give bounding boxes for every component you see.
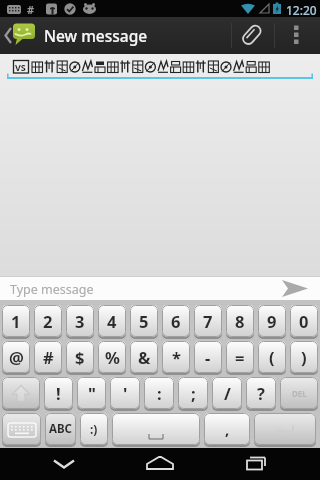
staticText: 12:20 [286,2,317,18]
button[interactable]: ; [178,377,208,411]
button[interactable]: - [194,341,222,375]
button[interactable]: ABC [45,413,76,447]
staticText: % [105,346,120,368]
button[interactable]: @ [2,341,30,375]
button[interactable]: 7 [194,305,222,339]
staticText: 8 [235,310,245,332]
staticText: ) [301,346,307,368]
button[interactable]: 4 [98,305,126,339]
button[interactable]: 0 [290,305,318,339]
button[interactable] [112,413,200,447]
button[interactable]: 9 [258,305,286,339]
staticText: VS [15,61,26,73]
button[interactable]: 2 [34,305,62,339]
button[interactable]: 6 [162,305,190,339]
button[interactable]: ( [258,341,286,375]
button[interactable]: ' [110,377,140,411]
button[interactable]: ) [290,341,318,375]
button[interactable]: # [34,341,62,375]
staticText: ; [191,382,196,404]
staticText: 5 [139,310,149,332]
staticText: , [225,419,230,439]
staticText: = [235,346,245,368]
staticText: 2 [43,310,53,332]
staticText: # [43,346,54,368]
staticText: 1 [11,310,21,332]
button[interactable] [0,448,106,480]
staticText: " [88,382,96,404]
button[interactable]: $ [66,341,94,375]
button[interactable] [213,448,320,480]
staticText: 6 [171,310,181,332]
button[interactable] [106,448,213,480]
button[interactable]: ? [246,377,276,411]
staticText: * [172,346,181,368]
staticText: :) [90,421,98,437]
staticText: ' [123,382,128,404]
button[interactable]: 3 [66,305,94,339]
staticText: : [157,382,162,404]
button[interactable]: : [144,377,174,411]
button[interactable]: * [162,341,190,375]
button[interactable]: :) [80,413,108,447]
staticText: @ [9,346,24,368]
button[interactable]: , [204,413,250,447]
staticText: 7 [203,310,213,332]
button[interactable] [2,377,40,411]
staticText: ? [257,382,265,404]
staticText: ! [56,382,61,404]
button[interactable]: 5 [130,305,158,339]
staticText: ( [269,346,275,368]
staticText: 4 [107,310,117,332]
button[interactable]: / [212,377,242,411]
button[interactable]: = [226,341,254,375]
button[interactable] [0,54,320,80]
staticText: $ [75,346,85,368]
staticText: & [138,346,151,368]
button[interactable]: ! [44,377,73,411]
staticText: 9 [267,310,277,332]
button[interactable] [276,276,320,300]
button[interactable]: 1 [2,305,30,339]
staticText: / [224,382,231,404]
button[interactable]: % [98,341,126,375]
button[interactable]: DEL [280,377,318,411]
staticText: DEL [292,388,307,399]
button[interactable] [254,413,316,447]
button[interactable]: & [130,341,158,375]
staticText: # [27,2,35,17]
staticText: - [205,346,211,368]
button[interactable]: " [77,377,106,411]
button[interactable]: Type message [10,281,94,298]
button[interactable]: 8 [226,305,254,339]
staticText: ABC [49,421,72,437]
button[interactable] [2,413,41,447]
staticText: 0 [299,310,309,332]
staticText: New message [44,25,148,46]
staticText: 3 [75,310,85,332]
